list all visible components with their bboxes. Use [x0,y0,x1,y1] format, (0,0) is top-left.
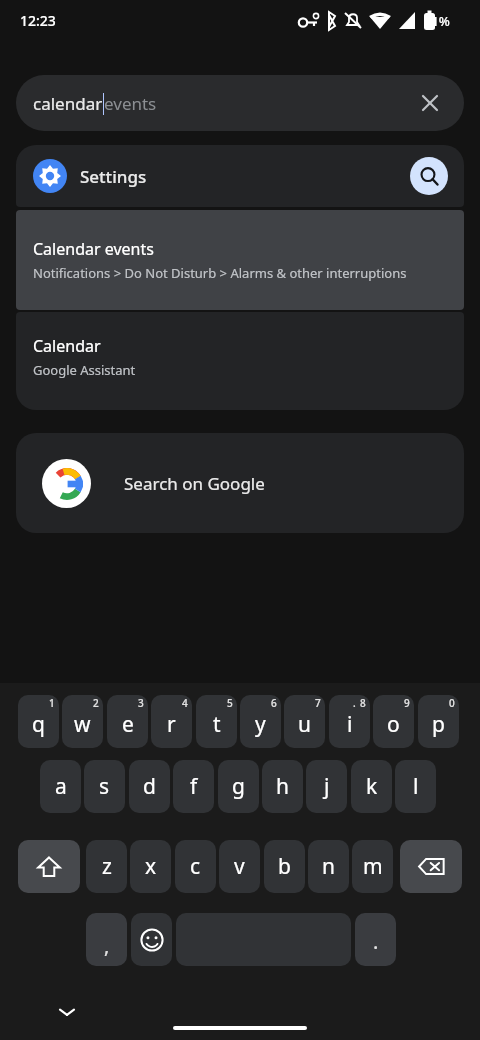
staticText: x [145,852,157,881]
button[interactable]: Calendar events [16,210,464,310]
button[interactable]: f [173,760,214,813]
staticText: 81% [424,12,450,30]
button[interactable]: l [395,760,436,813]
button[interactable]: Search on Google [16,433,464,533]
staticText: 1 [49,696,55,710]
button[interactable]: o [373,695,414,748]
button[interactable]: t [196,695,237,748]
staticText: p [432,710,445,739]
staticText: k [366,772,378,801]
staticText: Settings [80,165,147,188]
staticText: w [74,710,91,739]
button[interactable]: Search in Settings [410,157,448,195]
staticText: 7 [315,696,321,710]
staticText: 6 [271,696,277,710]
staticText: e [122,710,134,739]
staticText: , [104,932,110,959]
staticText: d [143,772,156,801]
staticText: 3 [138,696,144,710]
button[interactable]: Shift [18,840,80,893]
staticText: f [190,772,198,801]
button[interactable]: s [84,760,125,813]
staticText: o [387,710,400,739]
staticText: a [55,772,67,801]
staticText: 0 [449,696,455,710]
staticText: i [347,710,353,739]
staticText: h [276,772,289,801]
staticText: 4 [182,696,188,710]
button[interactable]: e [107,695,148,748]
button[interactable]: b [264,840,305,893]
button[interactable]: k [351,760,392,813]
staticText: b [278,852,291,881]
staticText: t [213,710,221,739]
staticText: q [32,710,45,739]
button[interactable]: c [175,840,216,893]
button[interactable]: u [284,695,325,748]
button[interactable]: y [240,695,281,748]
staticText: . [373,928,379,955]
button[interactable]: Comma [86,913,127,966]
button[interactable]: Clear search [410,83,450,123]
staticText: Google Assistant [33,361,136,379]
button[interactable]: r [151,695,192,748]
button[interactable]: j [306,760,347,813]
button[interactable]: p [418,695,459,748]
staticText: u [298,710,311,739]
button[interactable]: n [308,840,349,893]
button[interactable]: Period [355,913,396,966]
button[interactable]: Hide keyboard [52,997,82,1027]
button[interactable]: q [18,695,59,748]
button[interactable]: Calendar [16,312,464,410]
button[interactable]: Settings [16,145,464,207]
staticText: Search on Google [124,472,265,495]
button[interactable]: g [218,760,259,813]
staticText: 2 [93,696,99,710]
staticText: 9 [404,696,410,710]
staticText: Calendar [33,335,101,357]
staticText: v [234,852,245,881]
staticText: 5 [227,696,233,710]
staticText: g [232,772,245,801]
button[interactable]: i [329,695,370,748]
staticText: calendar [33,92,103,115]
staticText: 8 [360,696,366,710]
button[interactable]: x [130,840,171,893]
staticText: c [190,852,201,881]
button[interactable]: Emoji [131,913,172,966]
staticText: 12:23 [20,11,56,30]
button[interactable]: calendar [16,75,464,131]
staticText: l [413,772,419,801]
staticText: Notifications > Do Not Disturb > Alarms … [33,264,407,282]
button[interactable]: m [352,840,393,893]
button[interactable]: z [86,840,127,893]
staticText: j [324,772,330,801]
staticText: y [255,710,266,739]
staticText: events [104,92,157,115]
staticText: Calendar events [33,238,154,260]
staticText: m [363,852,383,881]
button[interactable]: d [129,760,170,813]
button[interactable]: h [262,760,303,813]
button[interactable]: Backspace [400,840,462,893]
staticText: . [353,696,356,710]
button[interactable]: a [40,760,81,813]
staticText: s [99,772,110,801]
button[interactable]: v [219,840,260,893]
staticText: r [167,710,176,739]
button[interactable]: w [62,695,103,748]
staticText: n [322,852,335,881]
staticText: z [102,852,112,881]
